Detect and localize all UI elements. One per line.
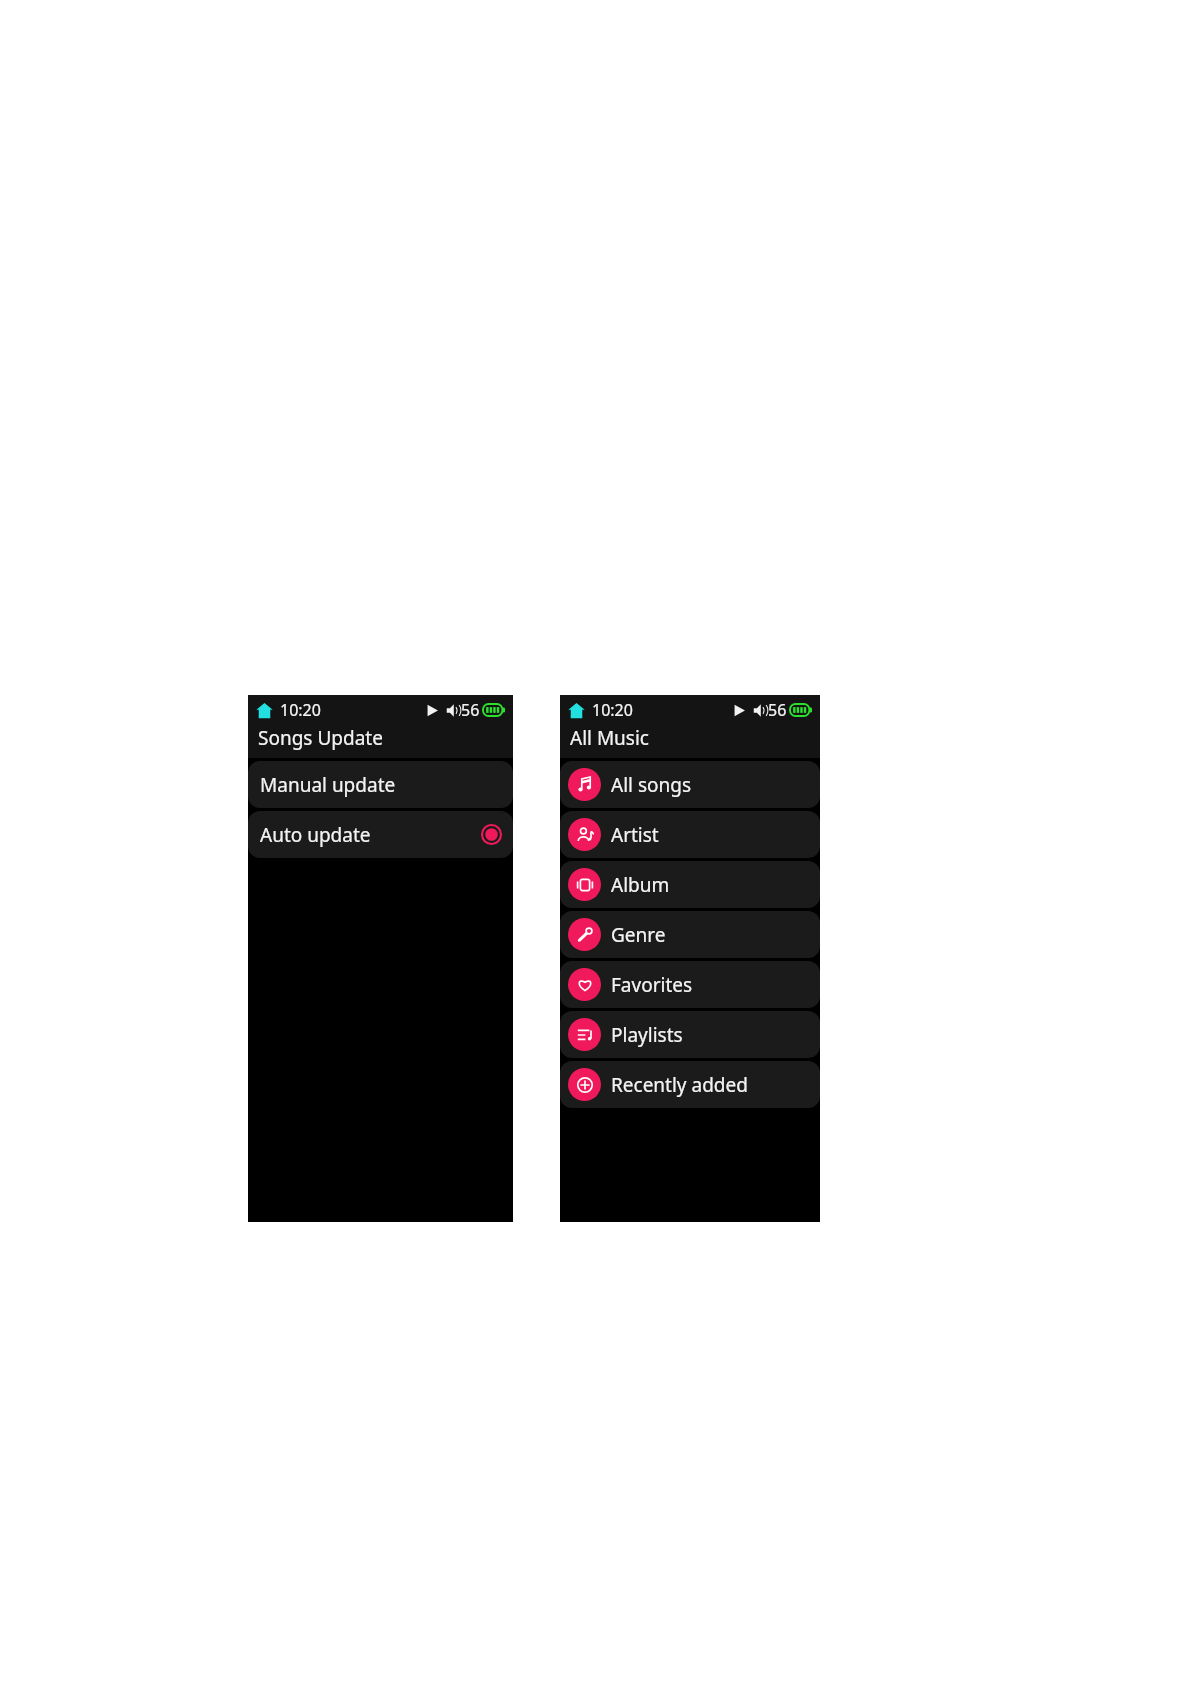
staticText: 56 <box>768 699 787 721</box>
button[interactable]: Favorites <box>560 961 820 1008</box>
staticText: Genre <box>611 922 666 948</box>
button[interactable]: Album <box>560 861 820 908</box>
staticText: Playlists <box>611 1022 683 1048</box>
button[interactable]: Auto update <box>248 811 513 858</box>
staticText: 10:20 <box>592 699 633 721</box>
staticText: Recently added <box>611 1072 748 1098</box>
staticText: Manual update <box>260 772 396 798</box>
staticText: Auto update <box>260 822 371 848</box>
button[interactable]: Artist <box>560 811 820 858</box>
button[interactable]: Manual update <box>248 761 513 808</box>
button[interactable]: Playlists <box>560 1011 820 1058</box>
staticText: Songs Update <box>258 725 383 751</box>
staticText: 10:20 <box>280 699 321 721</box>
button[interactable]: All songs <box>560 761 820 808</box>
staticText: Artist <box>611 822 659 848</box>
button[interactable]: Genre <box>560 911 820 958</box>
button[interactable]: Recently added <box>560 1061 820 1108</box>
staticText: Favorites <box>611 972 693 998</box>
staticText: 56 <box>461 699 480 721</box>
staticText: All Music <box>570 725 649 751</box>
staticText: Album <box>611 872 670 898</box>
staticText: All songs <box>611 772 692 798</box>
